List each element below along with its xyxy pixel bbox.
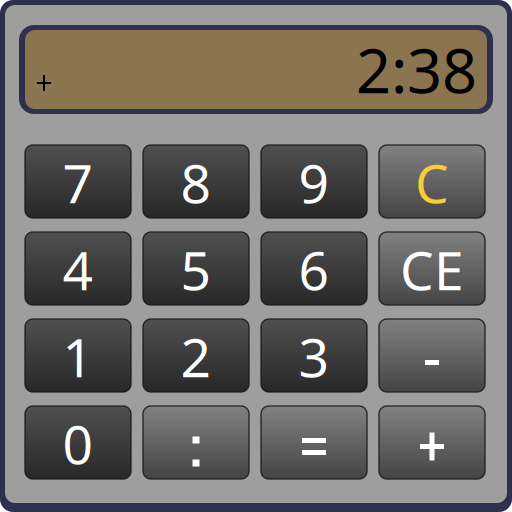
staticText: 6	[298, 234, 329, 305]
button[interactable]: 8	[143, 145, 249, 218]
staticText: 2	[180, 321, 211, 392]
staticText: 1	[62, 321, 93, 392]
staticText: 9	[298, 147, 329, 218]
button[interactable]: Minus	[379, 319, 485, 392]
button[interactable]: 2	[143, 319, 249, 392]
staticText: 8	[180, 147, 211, 218]
button[interactable]: 4	[25, 232, 131, 305]
button[interactable]: 7	[25, 145, 131, 218]
staticText: CE	[400, 234, 464, 305]
staticText: 3	[298, 321, 329, 392]
staticText: C	[415, 147, 449, 218]
button[interactable]: 1	[25, 319, 131, 392]
staticText: 7	[62, 147, 93, 218]
staticText: 2:38	[356, 29, 477, 110]
button[interactable]: Equals	[261, 406, 367, 479]
staticText: 5	[180, 234, 211, 305]
button[interactable]: Colon	[143, 406, 249, 479]
button[interactable]: 6	[261, 232, 367, 305]
button[interactable]: C	[379, 145, 485, 218]
button[interactable]: 5	[143, 232, 249, 305]
button[interactable]: 3	[261, 319, 367, 392]
button[interactable]: CE	[379, 232, 485, 305]
button[interactable]: 0	[25, 406, 131, 479]
button[interactable]: 9	[261, 145, 367, 218]
staticText: 4	[62, 234, 93, 305]
staticText: 0	[62, 408, 93, 479]
button[interactable]: Plus	[379, 406, 485, 479]
